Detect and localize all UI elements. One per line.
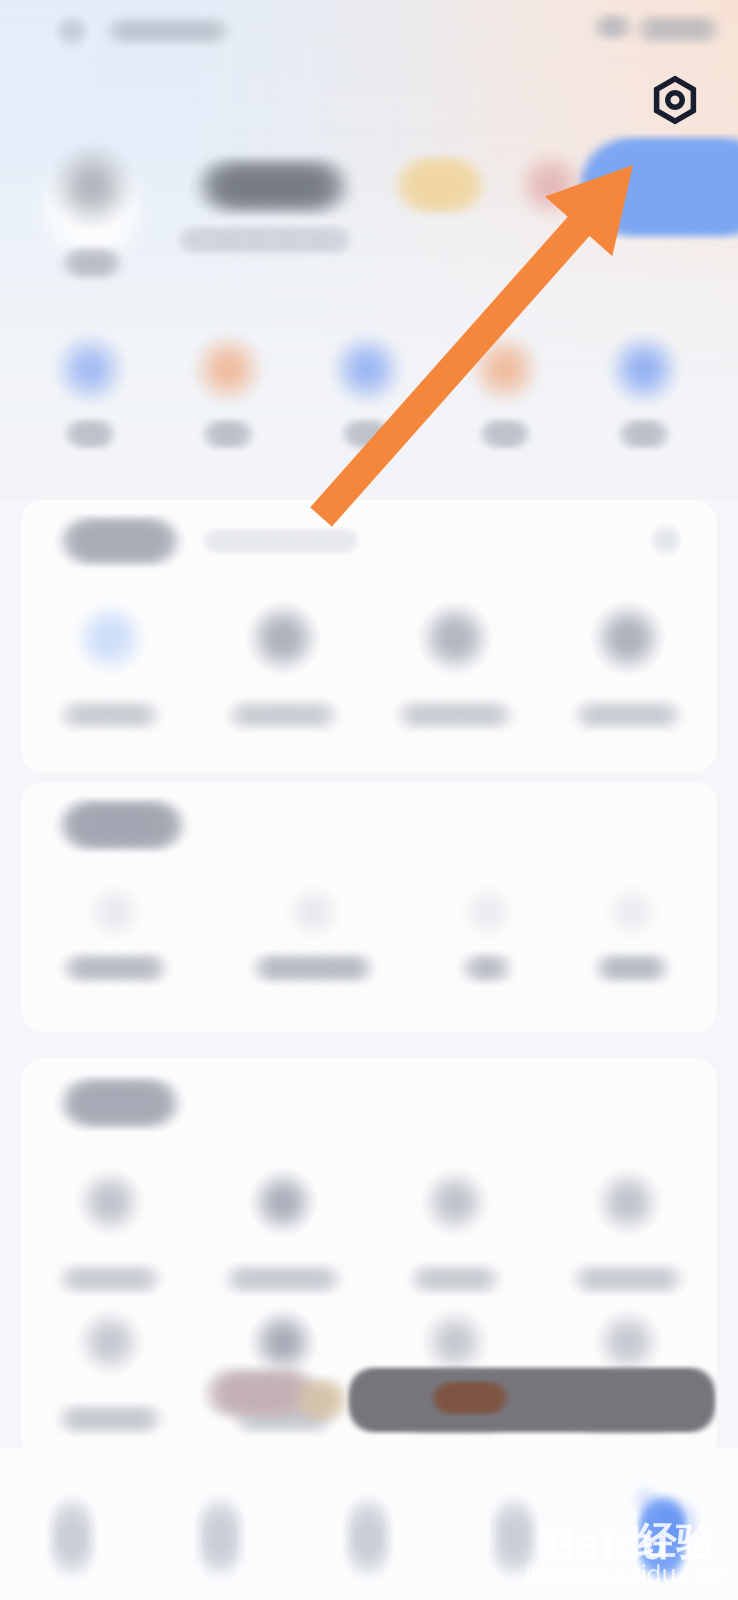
button[interactable]: Tab: [2, 1465, 142, 1600]
button[interactable]: Shortcut: [159, 328, 297, 478]
button[interactable]: Menu item: [369, 1150, 541, 1326]
button[interactable]: Menu item: [227, 860, 399, 1036]
button[interactable]: Shortcut: [298, 328, 436, 478]
button[interactable]: Shortcut: [21, 328, 159, 478]
button[interactable]: Menu item: [542, 1150, 714, 1326]
button[interactable]: Settings: [629, 54, 721, 146]
button[interactable]: Menu item: [369, 1290, 541, 1466]
staticText: Baidu: [547, 1515, 669, 1571]
button[interactable]: Shortcut: [575, 328, 713, 478]
button[interactable]: Menu item: [197, 586, 369, 762]
button[interactable]: Menu item: [542, 1290, 714, 1466]
button[interactable]: Menu item: [369, 586, 541, 762]
button[interactable]: Menu item: [29, 860, 201, 1036]
button[interactable]: Menu item: [197, 1290, 369, 1466]
button[interactable]: Menu item: [546, 860, 718, 1036]
button[interactable]: Menu item: [197, 1150, 369, 1326]
button[interactable]: Tab: [444, 1465, 584, 1600]
button[interactable]: Tab: [150, 1465, 290, 1600]
button[interactable]: Menu item: [401, 860, 573, 1036]
button[interactable]: Menu item: [24, 586, 196, 762]
button[interactable]: Shortcut: [436, 328, 574, 478]
button[interactable]: Tab: [298, 1465, 438, 1600]
staticText: 经验: [637, 1518, 715, 1566]
button[interactable]: Menu item: [24, 1150, 196, 1326]
button[interactable]: Menu item: [24, 1290, 196, 1466]
button[interactable]: Tab: [592, 1465, 732, 1600]
button[interactable]: Menu item: [542, 586, 714, 762]
staticText: jingyan.baidu.com: [524, 1557, 731, 1589]
